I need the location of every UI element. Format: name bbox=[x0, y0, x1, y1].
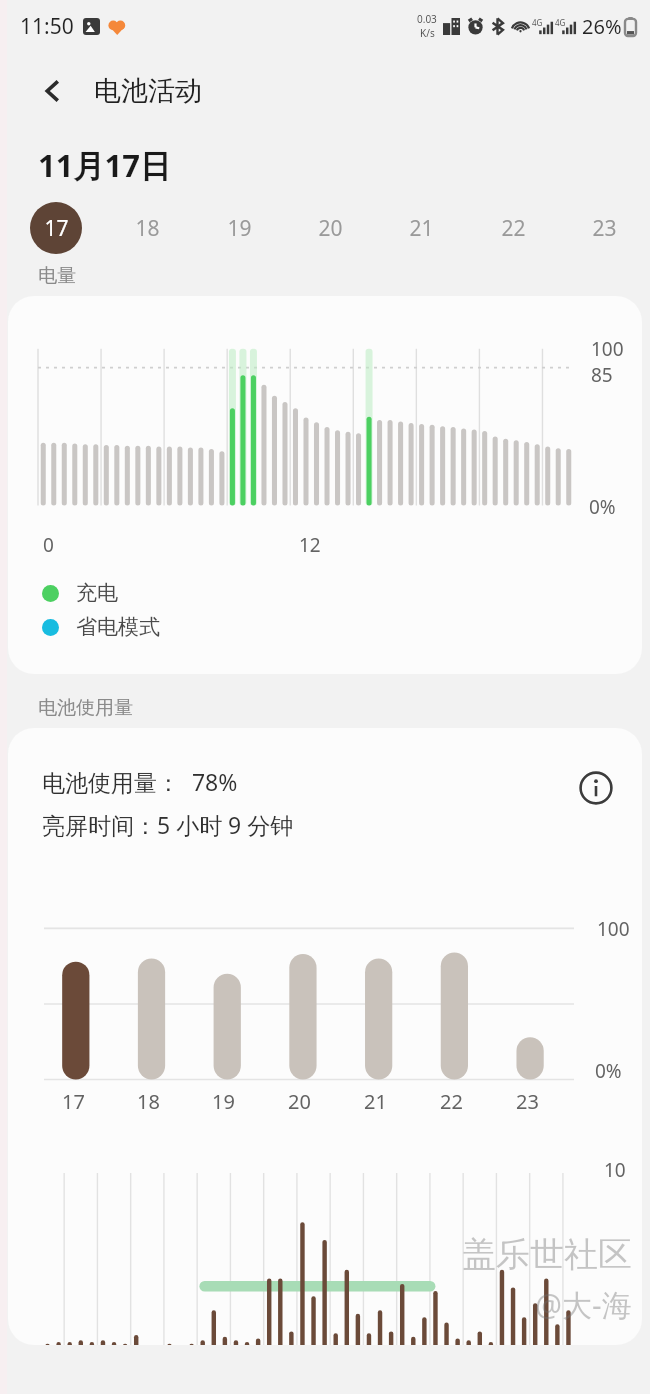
staticText: 电池使用量 bbox=[38, 696, 133, 720]
staticText: 充电 bbox=[76, 580, 118, 606]
staticText: 21 bbox=[364, 1088, 387, 1115]
button[interactable]: 18 bbox=[121, 202, 173, 254]
staticText: 0% bbox=[589, 494, 616, 520]
staticText: @大-海 bbox=[535, 1284, 632, 1325]
button[interactable]: 充电 bbox=[42, 580, 118, 606]
staticText: 85 bbox=[591, 362, 613, 388]
staticText: 22 bbox=[440, 1088, 463, 1115]
staticText: 22 bbox=[501, 214, 526, 243]
staticText: 12 bbox=[299, 532, 321, 558]
button[interactable]: Back bbox=[0, 52, 650, 130]
staticText: 100 bbox=[591, 336, 624, 362]
staticText: 10 bbox=[604, 1157, 626, 1183]
staticText: 亮屏时间：5 小时 9 分钟 bbox=[42, 809, 294, 840]
staticText: 11月17日 bbox=[38, 144, 171, 186]
staticText: 21 bbox=[409, 214, 434, 243]
button[interactable]: Info bbox=[576, 768, 616, 808]
staticText: 20 bbox=[288, 1088, 311, 1115]
staticText: 19 bbox=[212, 1088, 235, 1115]
staticText: K/s bbox=[420, 26, 435, 40]
staticText: 0% bbox=[595, 1058, 622, 1084]
button[interactable]: 0 bbox=[8, 296, 642, 674]
staticText: 0 bbox=[43, 532, 54, 558]
staticText: 电池使用量： 78% bbox=[42, 766, 238, 797]
button[interactable]: 电池使用量： 78% bbox=[8, 728, 642, 1345]
staticText: 17 bbox=[44, 214, 69, 243]
button[interactable]: 20 bbox=[304, 202, 356, 254]
button[interactable]: 17 bbox=[30, 202, 82, 254]
staticText: 电量 bbox=[38, 264, 76, 288]
staticText: 4G bbox=[532, 17, 543, 28]
staticText: 18 bbox=[135, 214, 160, 243]
button[interactable]: 21 bbox=[395, 202, 447, 254]
staticText: 18 bbox=[137, 1088, 160, 1115]
staticText: 盖乐世社区 bbox=[462, 1233, 632, 1276]
staticText: 26% bbox=[582, 13, 622, 40]
staticText: 23 bbox=[592, 214, 617, 243]
staticText: 17 bbox=[62, 1088, 85, 1115]
button[interactable]: 23 bbox=[578, 202, 630, 254]
staticText: 23 bbox=[516, 1088, 539, 1115]
staticText: 20 bbox=[318, 214, 343, 243]
staticText: 电池活动 bbox=[94, 74, 202, 108]
button[interactable]: 22 bbox=[487, 202, 539, 254]
button[interactable]: Back bbox=[34, 72, 72, 110]
staticText: 19 bbox=[227, 214, 252, 243]
button[interactable]: 19 bbox=[213, 202, 265, 254]
staticText: 100 bbox=[597, 916, 630, 942]
staticText: 0.03 bbox=[417, 12, 437, 26]
staticText: 11:50 bbox=[20, 12, 74, 41]
button[interactable]: 省电模式 bbox=[42, 614, 160, 640]
staticText: 省电模式 bbox=[76, 614, 160, 640]
staticText: 4G bbox=[555, 17, 566, 28]
